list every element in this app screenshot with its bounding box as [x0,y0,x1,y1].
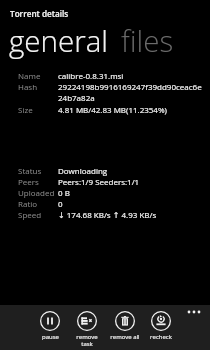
staticText: pause [42,333,59,341]
staticText: Downloading [58,165,108,176]
button[interactable]: recheck [140,311,182,341]
staticText: Name [18,70,41,81]
staticText: 0 B [58,187,70,198]
button[interactable]: pause [29,311,71,341]
staticText: Status [18,165,42,176]
staticText: 4.81 MB/42.83 MB(11.2354%) [58,104,167,115]
staticText: Peers:1/9 Seeders:1/1 [58,176,140,187]
staticText: Uploaded [18,187,55,198]
staticText: recheck [150,333,172,341]
staticText: Torrent details [10,8,69,19]
button[interactable]: More options [183,301,205,323]
staticText: 0 [58,198,63,209]
staticText: calibre-0.8.31.msi [58,70,124,81]
staticText: Ratio [18,198,38,209]
staticText: general [9,20,108,60]
staticText: Size [18,104,33,115]
button[interactable]: remove all [104,311,146,341]
staticText: Peers [18,176,39,187]
staticText: 29224198b9916169247f39dd90ceac6e24b7a82a [58,81,202,104]
staticText: Speed [18,209,42,220]
staticText: Hash [18,81,38,92]
staticText: remove task [76,333,98,348]
staticText: files [121,20,174,60]
button[interactable]: remove task [66,311,108,348]
staticText: ↓ 174.68 KB/s ↑ 4.93 KB/s [58,209,157,220]
staticText: remove all [110,333,140,341]
